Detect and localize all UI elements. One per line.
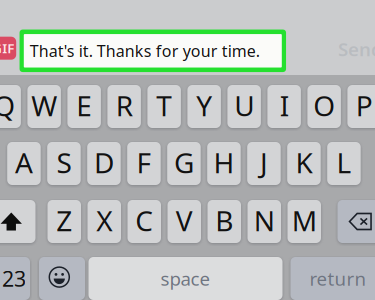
button[interactable]: return xyxy=(290,257,375,300)
button[interactable]: G xyxy=(167,142,201,185)
staticText: Send xyxy=(338,37,375,61)
staticText: D xyxy=(94,144,114,181)
staticText: Q xyxy=(0,87,15,124)
button[interactable]: Q xyxy=(0,85,21,128)
staticText: R xyxy=(116,87,133,124)
button[interactable]: I xyxy=(267,85,301,128)
staticText: GIF xyxy=(0,39,14,57)
button[interactable]: space xyxy=(88,257,282,300)
staticText: N xyxy=(254,202,275,239)
staticText: G xyxy=(174,144,194,181)
staticText: O xyxy=(313,87,335,124)
staticText: space xyxy=(160,266,210,291)
staticText: L xyxy=(336,144,351,181)
button[interactable]: F xyxy=(127,142,161,185)
staticText: 123 xyxy=(0,264,26,293)
button[interactable]: N xyxy=(247,200,281,243)
button[interactable]: That's it. Thanks for your time. xyxy=(20,29,286,72)
button[interactable]: W xyxy=(27,85,61,128)
staticText: W xyxy=(31,87,57,124)
staticText: K xyxy=(295,144,312,181)
staticText: P xyxy=(356,87,373,124)
staticText: B xyxy=(215,202,233,239)
staticText: return xyxy=(309,266,366,291)
button[interactable]: T xyxy=(147,85,181,128)
button[interactable]: X xyxy=(87,200,121,243)
staticText: E xyxy=(76,87,92,124)
button[interactable]: B xyxy=(207,200,241,243)
button[interactable]: M xyxy=(287,200,321,243)
staticText: That's it. Thanks for your time. xyxy=(30,40,260,61)
button[interactable]: V xyxy=(167,200,201,243)
staticText: C xyxy=(135,202,153,239)
staticText: Z xyxy=(56,202,72,239)
button[interactable]: P xyxy=(347,85,375,128)
button[interactable]: A xyxy=(7,142,41,185)
staticText: F xyxy=(136,144,151,181)
button[interactable]: Shift xyxy=(0,200,35,243)
button[interactable]: R xyxy=(107,85,141,128)
staticText: T xyxy=(156,87,172,124)
button[interactable]: Send xyxy=(338,34,375,64)
button[interactable]: O xyxy=(307,85,341,128)
button[interactable]: Y xyxy=(187,85,221,128)
staticText: J xyxy=(260,144,268,181)
button[interactable]: L xyxy=(327,142,361,185)
button[interactable]: Z xyxy=(47,200,81,243)
button[interactable]: J xyxy=(247,142,281,185)
button[interactable]: Emoji xyxy=(39,257,85,300)
button[interactable]: S xyxy=(47,142,81,185)
button[interactable]: E xyxy=(67,85,101,128)
button[interactable]: K xyxy=(287,142,321,185)
button[interactable]: GIF xyxy=(0,37,16,60)
staticText: Y xyxy=(196,87,212,124)
button[interactable]: Delete xyxy=(337,200,375,243)
button[interactable]: 123 xyxy=(0,257,30,300)
button[interactable]: D xyxy=(87,142,121,185)
staticText: A xyxy=(15,144,33,181)
button[interactable]: H xyxy=(207,142,241,185)
staticText: U xyxy=(234,87,254,124)
staticText: V xyxy=(176,202,193,239)
button[interactable]: C xyxy=(127,200,161,243)
staticText: H xyxy=(213,144,234,181)
staticText: X xyxy=(96,202,112,239)
staticText: S xyxy=(56,144,71,181)
staticText: I xyxy=(280,87,289,124)
staticText: M xyxy=(292,202,317,239)
button[interactable]: U xyxy=(227,85,261,128)
